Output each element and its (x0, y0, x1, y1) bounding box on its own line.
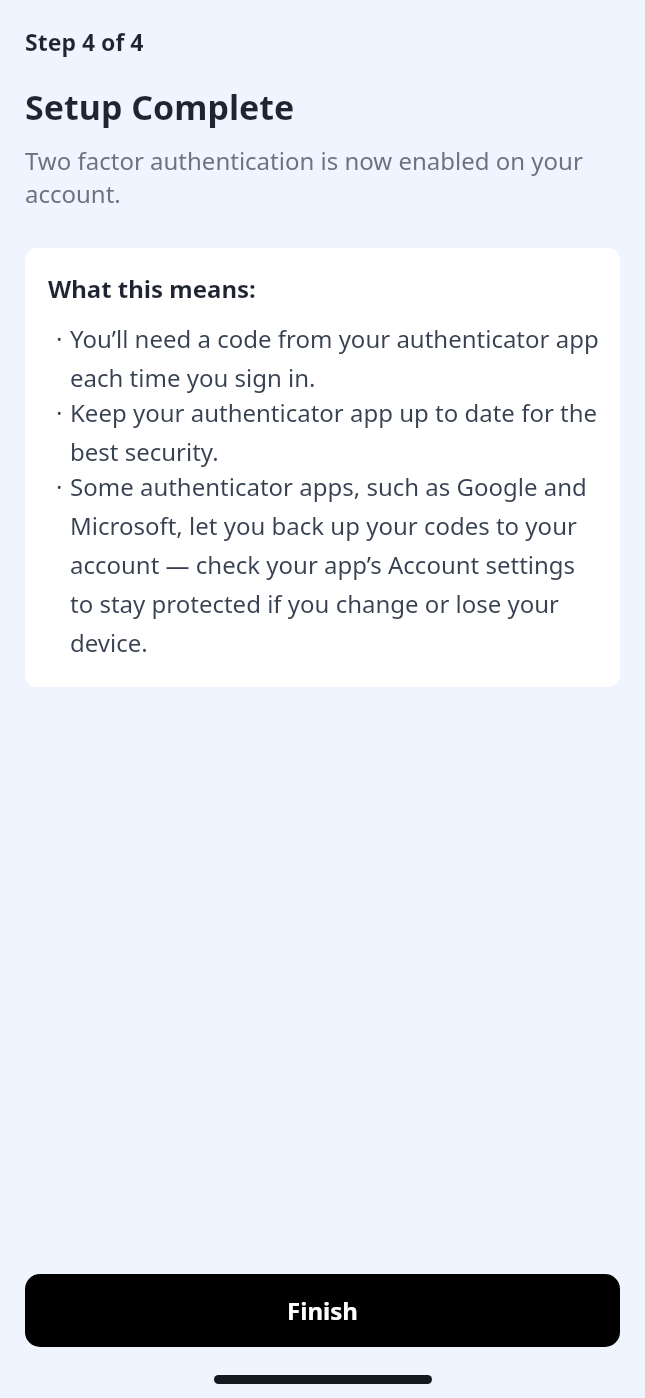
button[interactable]: Finish (25, 1274, 620, 1347)
staticText: · (56, 470, 63, 503)
staticText: · (56, 322, 63, 355)
staticText: · (56, 396, 63, 429)
staticText: Setup Complete (25, 84, 295, 130)
staticText: Finish (287, 1294, 358, 1327)
staticText: What this means: (48, 272, 256, 305)
staticText: Step 4 of 4 (25, 26, 144, 57)
staticText: Some authenticator apps, such as Google … (70, 470, 600, 659)
other: Home indicator (214, 1375, 432, 1384)
staticText: Keep your authenticator app up to date f… (70, 396, 600, 468)
staticText: Two factor authentication is now enabled… (25, 144, 620, 210)
staticText: You’ll need a code from your authenticat… (70, 322, 600, 394)
